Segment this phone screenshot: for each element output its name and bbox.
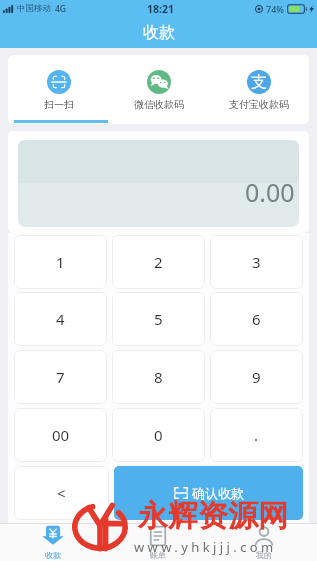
staticText: 74% (266, 3, 284, 15)
button[interactable]: 我的 (211, 523, 317, 561)
staticText: 3 (252, 252, 261, 272)
button[interactable]: 收款 (0, 523, 105, 561)
staticText: 永辉资源网 (138, 497, 288, 535)
staticText: 支付宝收款码 (229, 98, 289, 111)
button[interactable]: 确认收款 (114, 466, 303, 520)
staticText: 确认收款 (192, 485, 244, 501)
staticText: 收款 (143, 23, 175, 43)
staticText: 7 (56, 367, 65, 387)
button[interactable]: 1 (14, 235, 107, 289)
staticText: . (254, 425, 259, 445)
button[interactable]: 6 (210, 292, 303, 346)
staticText: 8 (154, 367, 163, 387)
staticText: 我的 (256, 550, 272, 560)
button[interactable]: 支 (209, 55, 309, 111)
staticText: 4 (56, 309, 65, 329)
button[interactable]: < (14, 466, 109, 520)
staticText: 2 (154, 252, 163, 272)
staticText: 微信收款码 (134, 98, 184, 111)
staticText: 5 (154, 309, 163, 329)
button[interactable]: . (210, 408, 303, 462)
staticText: 4G (55, 3, 67, 15)
button[interactable]: 5 (112, 292, 205, 346)
staticText: 6 (252, 309, 261, 329)
staticText: 0.00 (245, 175, 295, 209)
staticText: 00 (52, 425, 70, 445)
staticText: 18:21 (147, 2, 174, 16)
button[interactable]: 7 (14, 350, 107, 404)
button[interactable]: 账单 (105, 523, 211, 561)
button[interactable]: 9 (210, 350, 303, 404)
staticText: www.yhkjjj.com (134, 538, 277, 556)
staticText: 收款 (45, 550, 61, 560)
staticText: 0 (154, 425, 163, 445)
button[interactable]: 0 (112, 408, 205, 462)
staticText: 支 (251, 72, 267, 92)
button[interactable]: 8 (112, 350, 205, 404)
button[interactable]: 2 (112, 235, 205, 289)
button[interactable]: 微信收款码 (109, 55, 209, 111)
staticText: < (57, 483, 66, 503)
staticText: 9 (252, 367, 261, 387)
staticText: 账单 (150, 550, 166, 560)
staticText: 1 (56, 252, 65, 272)
button[interactable]: 00 (14, 408, 107, 462)
button[interactable]: 扫一扫 (8, 55, 109, 111)
staticText: 中国移动 (17, 3, 51, 14)
staticText: 扫一扫 (44, 98, 74, 111)
button[interactable]: 4 (14, 292, 107, 346)
button[interactable]: 3 (210, 235, 303, 289)
